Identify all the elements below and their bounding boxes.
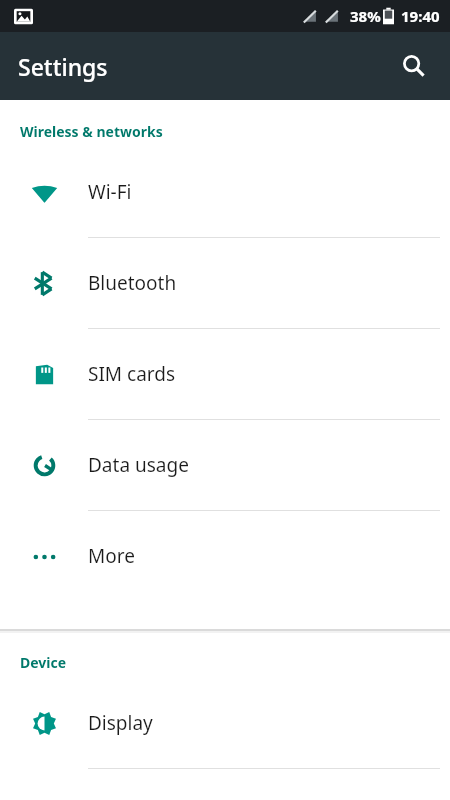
staticText: Bluetooth xyxy=(88,270,177,296)
button[interactable]: Search xyxy=(392,44,436,88)
staticText: More xyxy=(88,543,135,569)
staticText: Wi-Fi xyxy=(88,179,132,205)
button[interactable]: Bluetooth xyxy=(0,238,450,328)
button[interactable]: Display xyxy=(0,678,450,768)
staticText: Wireless & networks xyxy=(20,122,163,141)
staticText: Settings xyxy=(18,51,108,82)
staticText: Display xyxy=(88,710,153,736)
staticText: Device xyxy=(20,653,67,672)
button[interactable]: SIM cards xyxy=(0,329,450,419)
staticText: SIM cards xyxy=(88,361,176,387)
staticText: 38% xyxy=(350,6,381,26)
staticText: Data usage xyxy=(88,452,189,478)
button[interactable]: Wi-Fi xyxy=(0,147,450,237)
button[interactable]: Data usage xyxy=(0,420,450,510)
button[interactable]: More xyxy=(0,511,450,601)
staticText: 19:40 xyxy=(401,6,440,26)
